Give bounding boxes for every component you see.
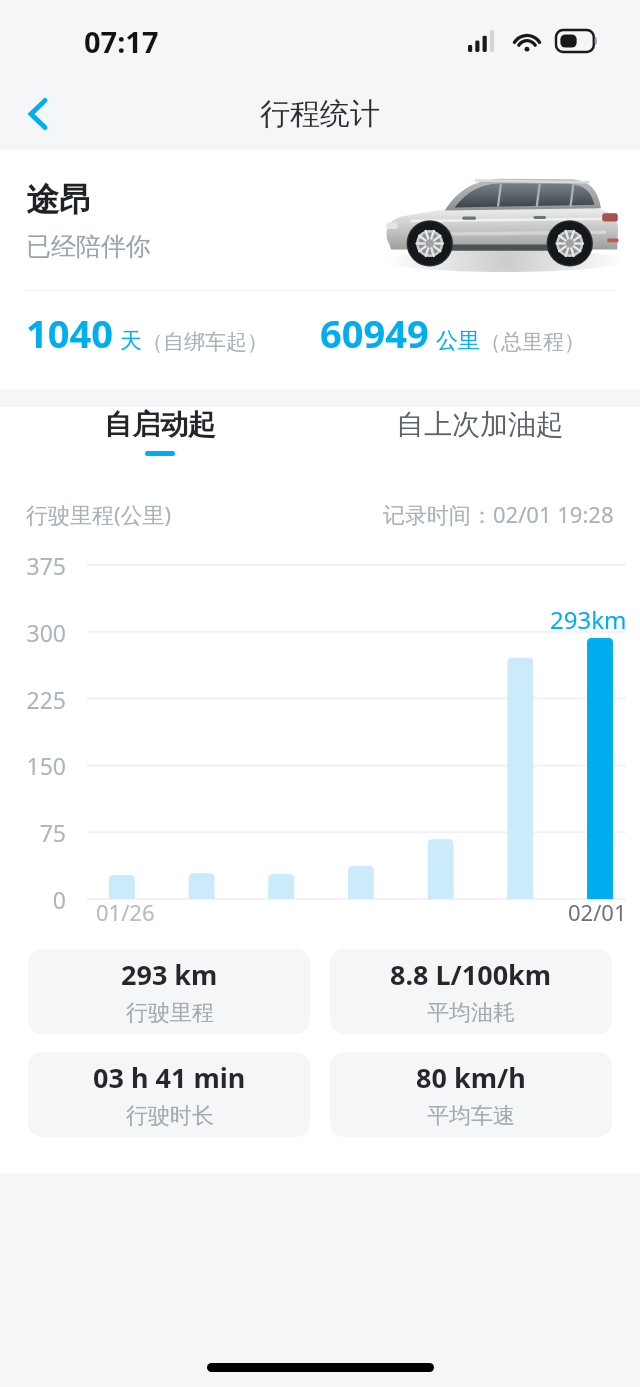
staticText: 行程统计 <box>260 95 380 133</box>
staticText: 自上次加油起 <box>396 407 564 442</box>
staticText: 01/26 <box>96 897 155 927</box>
button[interactable]: 自启动起 <box>0 407 320 456</box>
staticText: （总里程） <box>480 329 585 355</box>
staticText: 300 <box>26 617 66 648</box>
staticText: 150 <box>26 750 66 781</box>
button[interactable]: 自上次加油起 <box>320 407 640 456</box>
staticText: 293km <box>550 603 627 636</box>
staticText: 已经陪伴你 <box>26 231 151 262</box>
staticText: 80 km/h <box>416 1059 526 1096</box>
staticText: 公里 <box>436 327 480 355</box>
staticText: 自启动起 <box>104 407 216 442</box>
staticText: 记录时间：02/01 19:28 <box>383 499 614 529</box>
staticText: 行驶里程 <box>126 999 214 1027</box>
staticText: 途昂 <box>26 179 92 221</box>
staticText: 225 <box>26 684 66 715</box>
staticText: 02/01 <box>568 897 627 927</box>
button[interactable]: 8.8 L/100km <box>330 949 612 1034</box>
staticText: 平均车速 <box>427 1102 515 1130</box>
staticText: 平均油耗 <box>427 999 515 1027</box>
staticText: 375 <box>26 550 66 581</box>
button[interactable]: 80 km/h <box>330 1052 612 1137</box>
staticText: 60949 <box>320 307 429 359</box>
staticText: 8.8 L/100km <box>390 956 552 993</box>
staticText: 行驶时长 <box>126 1102 214 1130</box>
staticText: 03 h 41 min <box>93 1059 246 1096</box>
staticText: 0 <box>52 884 66 915</box>
button[interactable]: Back <box>0 78 76 150</box>
button[interactable]: 293 km <box>28 949 310 1034</box>
staticText: 75 <box>39 817 66 848</box>
button[interactable]: 03 h 41 min <box>28 1052 310 1137</box>
staticText: （自绑车起） <box>142 329 268 355</box>
staticText: 07:17 <box>84 22 159 61</box>
staticText: 天 <box>120 327 142 355</box>
staticText: 行驶里程(公里) <box>26 499 172 529</box>
staticText: 293 km <box>121 956 218 993</box>
staticText: 1040 <box>26 307 113 359</box>
